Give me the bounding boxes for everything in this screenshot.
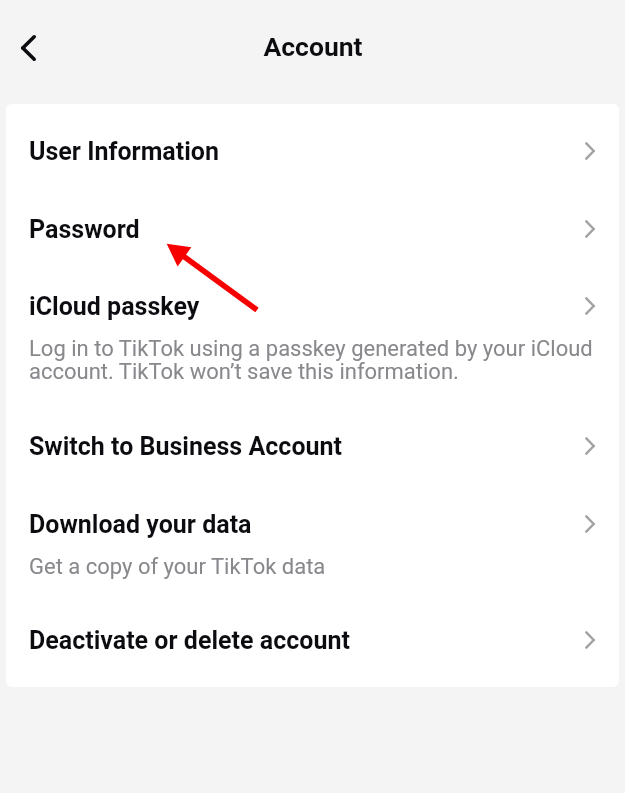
button[interactable]: Download your data — [6, 493, 619, 609]
button[interactable]: Back — [5, 25, 51, 71]
staticText: Account — [263, 33, 363, 62]
staticText: iCloud passkey — [29, 292, 200, 321]
staticText: User Information — [29, 137, 219, 166]
button[interactable]: Switch to Business Account — [6, 404, 619, 493]
staticText: Log in to TikTok using a passkey generat… — [29, 338, 605, 384]
staticText: Password — [29, 215, 140, 244]
staticText: Get a copy of your TikTok data — [29, 556, 605, 579]
staticText: Download your data — [29, 510, 252, 539]
staticText: Switch to Business Account — [29, 432, 342, 461]
button[interactable]: iCloud passkey — [6, 276, 619, 404]
button[interactable]: Password — [6, 198, 619, 276]
staticText: Deactivate or delete account — [29, 626, 350, 655]
button[interactable]: Deactivate or delete account — [6, 609, 619, 687]
button[interactable]: User Information — [6, 104, 619, 198]
